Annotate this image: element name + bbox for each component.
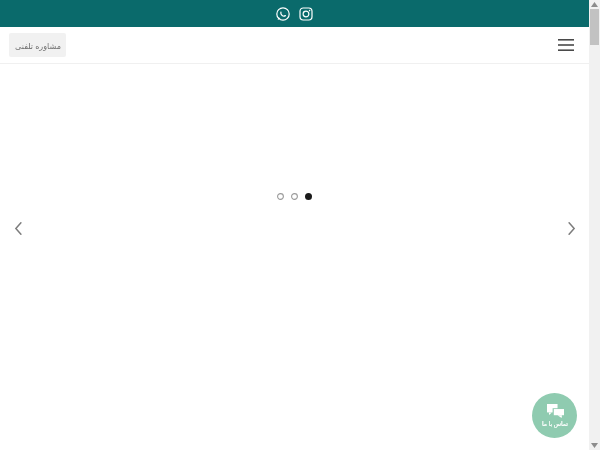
staticText: مشاوره تلفنی bbox=[15, 40, 61, 51]
button[interactable]: مشاوره تلفنی bbox=[9, 33, 66, 57]
button[interactable]: Previous slide bbox=[7, 217, 29, 239]
staticText: تماس با ما bbox=[542, 420, 568, 428]
button[interactable]: Menu bbox=[555, 34, 577, 56]
button[interactable]: تماس با ما bbox=[532, 393, 577, 438]
button[interactable]: WhatsApp bbox=[274, 5, 292, 23]
button[interactable]: Instagram bbox=[297, 5, 315, 23]
button[interactable]: Next slide bbox=[560, 217, 582, 239]
